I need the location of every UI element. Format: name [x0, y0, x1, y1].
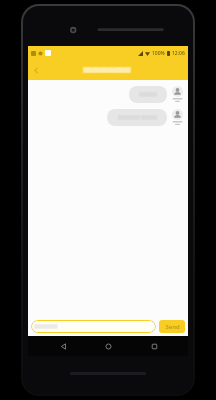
- button[interactable]: Contact avatar: [28, 86, 185, 103]
- other: Contact avatar: [172, 86, 183, 97]
- button[interactable]: [31, 320, 156, 333]
- button[interactable]: Contact avatar: [28, 109, 185, 126]
- staticText: 12:06: [172, 50, 185, 57]
- staticText: 100%: [152, 50, 165, 57]
- button[interactable]: Send: [159, 320, 185, 333]
- other: Contact avatar: [172, 109, 183, 120]
- button[interactable]: Back: [28, 62, 44, 78]
- button[interactable]: Recent apps: [143, 336, 165, 356]
- button[interactable]: Back: [52, 336, 74, 356]
- staticText: Send: [165, 323, 180, 331]
- button[interactable]: Home: [97, 336, 119, 356]
